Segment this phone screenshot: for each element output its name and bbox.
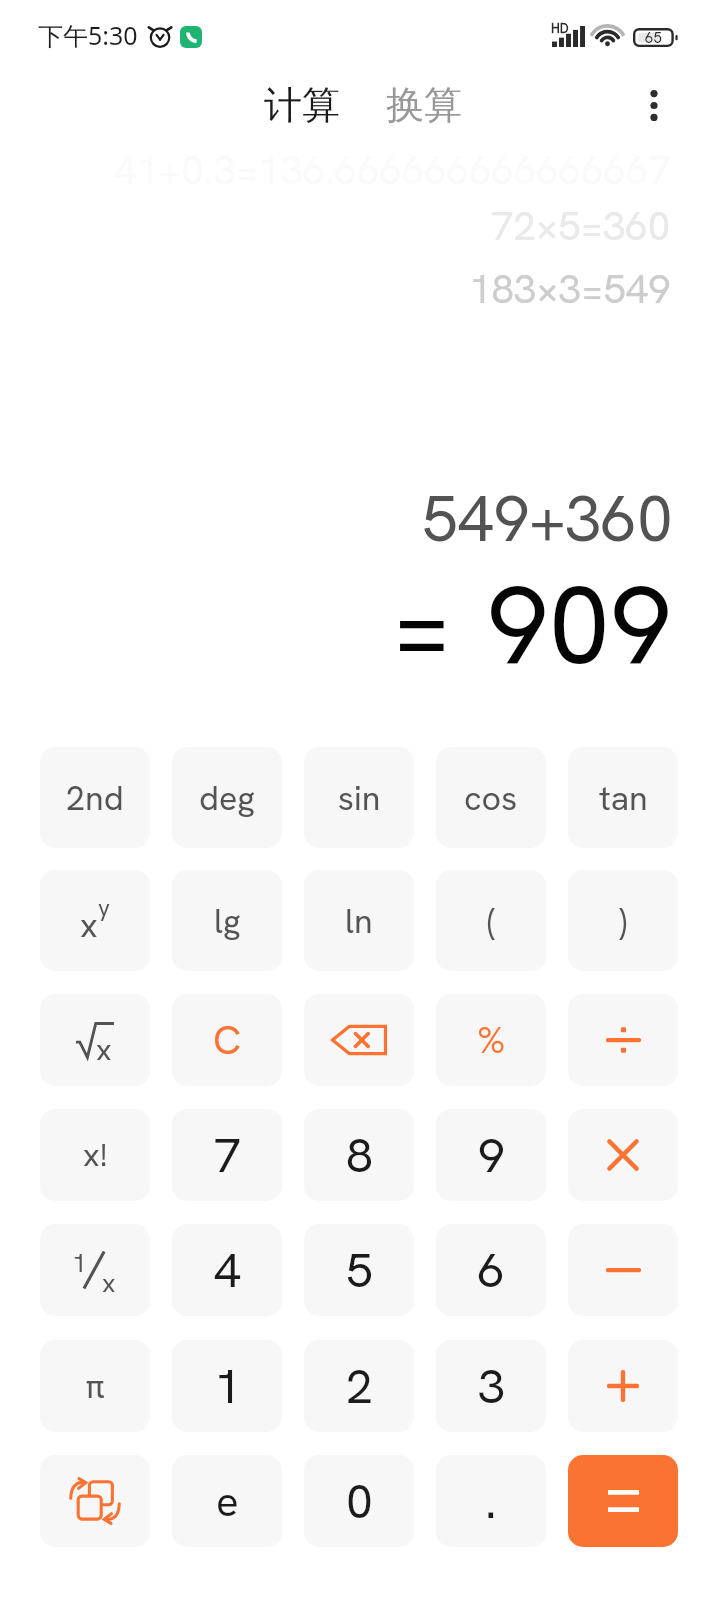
staticText: x: [102, 1266, 116, 1300]
button[interactable]: tan: [568, 747, 678, 848]
staticText: y: [98, 893, 110, 923]
button[interactable]: minus: [568, 1224, 678, 1316]
staticText: 65: [645, 28, 662, 47]
button[interactable]: multiply: [568, 1109, 678, 1201]
button[interactable]: 计算: [260, 73, 344, 137]
button[interactable]: 1/x: [40, 1224, 150, 1316]
staticText: 909: [487, 553, 672, 696]
staticText: %: [477, 1015, 506, 1065]
button[interactable]: C: [172, 994, 282, 1086]
staticText: 3: [478, 1355, 505, 1418]
staticText: cos: [464, 776, 518, 820]
staticText: 6: [478, 1239, 505, 1302]
button[interactable]: 0: [304, 1455, 414, 1547]
staticText: C: [213, 1014, 242, 1066]
staticText: 8: [346, 1124, 373, 1187]
button[interactable]: backspace: [304, 994, 414, 1086]
staticText: HD: [551, 20, 569, 37]
button[interactable]: equals: [568, 1455, 678, 1547]
staticText: e: [216, 1474, 239, 1529]
button[interactable]: deg: [172, 747, 282, 848]
staticText: (: [487, 897, 495, 944]
staticText: x: [96, 1030, 112, 1066]
staticText: π: [85, 1364, 105, 1408]
staticText: 4: [214, 1239, 241, 1302]
staticText: 549+360: [422, 477, 673, 560]
staticText: 9: [478, 1124, 505, 1187]
button[interactable]: 7: [172, 1109, 282, 1201]
button[interactable]: convert: [40, 1455, 150, 1547]
staticText: 换算: [386, 81, 462, 129]
button[interactable]: ln: [304, 870, 414, 971]
staticText: x: [80, 903, 98, 947]
button[interactable]: 5: [304, 1224, 414, 1316]
button[interactable]: 2: [304, 1340, 414, 1432]
button[interactable]: 换算: [382, 73, 466, 137]
button[interactable]: 8: [304, 1109, 414, 1201]
staticText: 7: [214, 1124, 241, 1187]
staticText: 5: [346, 1239, 373, 1302]
button[interactable]: divide: [568, 994, 678, 1086]
button[interactable]: 4: [172, 1224, 282, 1316]
staticText: 72×5=360: [491, 200, 671, 252]
staticText: 0: [346, 1470, 373, 1533]
button[interactable]: e: [172, 1455, 282, 1547]
staticText: ): [619, 897, 627, 944]
button[interactable]: 1: [172, 1340, 282, 1432]
staticText: tan: [599, 776, 648, 820]
staticText: ln: [345, 899, 373, 943]
staticText: 1: [214, 1355, 241, 1418]
button[interactable]: 2nd: [40, 747, 150, 848]
staticText: .: [485, 1470, 497, 1533]
button[interactable]: %: [436, 994, 546, 1086]
staticText: 下午5:30: [38, 18, 138, 52]
button[interactable]: 3: [436, 1340, 546, 1432]
staticText: 183×3=549: [469, 263, 671, 315]
button[interactable]: sin: [304, 747, 414, 848]
button[interactable]: 9: [436, 1109, 546, 1201]
button[interactable]: ): [568, 870, 678, 971]
staticText: 2: [346, 1355, 373, 1418]
button[interactable]: lg: [172, 870, 282, 971]
button[interactable]: x!: [40, 1109, 150, 1201]
button[interactable]: π: [40, 1340, 150, 1432]
staticText: lg: [214, 899, 241, 943]
button[interactable]: (: [436, 870, 546, 971]
staticText: 1: [72, 1246, 87, 1280]
button[interactable]: cos: [436, 747, 546, 848]
staticText: x!: [83, 1134, 108, 1176]
staticText: 2nd: [66, 776, 124, 820]
button[interactable]: 6: [436, 1224, 546, 1316]
button[interactable]: square root: [40, 994, 150, 1086]
staticText: =: [391, 553, 453, 696]
staticText: deg: [199, 776, 255, 820]
button[interactable]: More options: [632, 83, 676, 127]
button[interactable]: x^y: [40, 870, 150, 971]
button[interactable]: .: [436, 1455, 546, 1547]
staticText: sin: [338, 776, 381, 820]
button[interactable]: plus: [568, 1340, 678, 1432]
staticText: 计算: [264, 81, 340, 129]
